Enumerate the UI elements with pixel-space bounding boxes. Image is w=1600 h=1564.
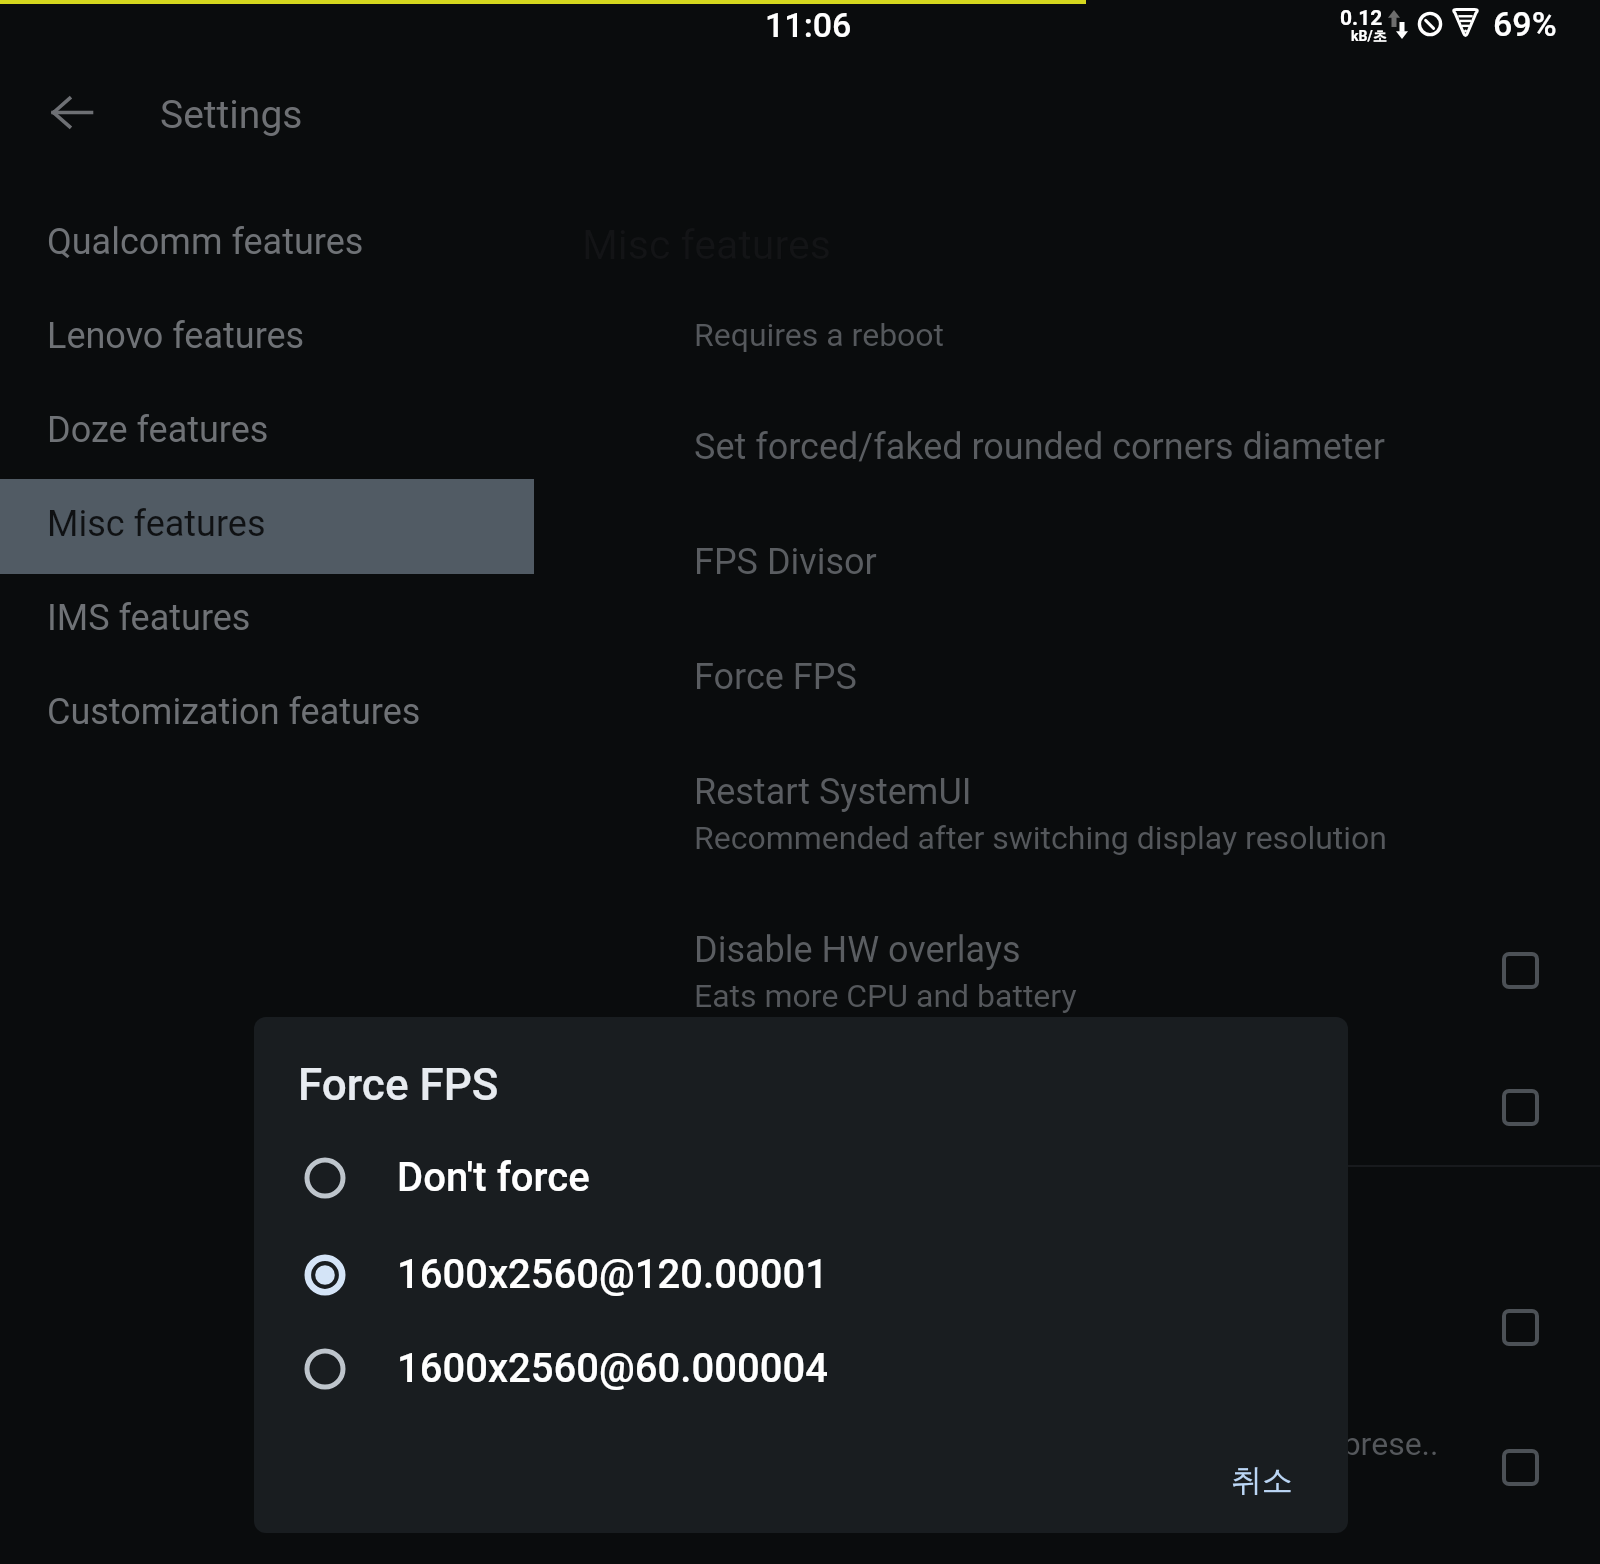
staticText: Force FPS bbox=[694, 656, 857, 698]
staticText: Doze features bbox=[47, 409, 269, 451]
staticText: Settings bbox=[160, 92, 303, 138]
button[interactable]: 취소 bbox=[1211, 1447, 1313, 1514]
button[interactable]: Toggle option bbox=[1484, 1071, 1556, 1143]
button[interactable] bbox=[660, 375, 1450, 485]
staticText: 69% bbox=[1493, 4, 1557, 44]
staticText: Customization features bbox=[47, 691, 421, 733]
button[interactable]: IMS features bbox=[0, 573, 534, 668]
staticText: IMS features bbox=[47, 597, 251, 639]
staticText: FPS Divisor bbox=[694, 541, 877, 583]
button[interactable] bbox=[660, 490, 1450, 600]
staticText: 취소 bbox=[1231, 1461, 1293, 1500]
staticText: 0.12 bbox=[1340, 6, 1383, 31]
staticText: kB/초 bbox=[1351, 28, 1387, 46]
button[interactable]: Toggle option bbox=[1484, 1431, 1556, 1503]
button[interactable] bbox=[660, 605, 1450, 715]
staticText: Requires a reboot bbox=[694, 316, 945, 354]
staticText: 11:06 bbox=[765, 5, 852, 45]
staticText: 1600x2560@60.000004 bbox=[397, 1345, 828, 1392]
button[interactable]: Customization features bbox=[0, 667, 534, 762]
button[interactable]: 1600x2560@120.00001 bbox=[274, 1228, 1328, 1322]
staticText: Lenovo features bbox=[47, 315, 305, 357]
staticText: Misc features bbox=[47, 503, 266, 545]
button[interactable]: Don't force bbox=[274, 1131, 1328, 1225]
button[interactable] bbox=[660, 878, 1450, 1028]
staticText: Qualcomm features bbox=[47, 221, 364, 263]
button[interactable]: Qualcomm features bbox=[0, 197, 534, 292]
button[interactable]: Misc features bbox=[0, 479, 534, 574]
button[interactable]: 1600x2560@60.000004 bbox=[274, 1322, 1328, 1416]
button[interactable] bbox=[660, 258, 1450, 368]
button[interactable] bbox=[660, 1378, 1450, 1528]
staticText: 1600x2560@120.00001 bbox=[397, 1251, 828, 1298]
staticText: Disable HW overlays bbox=[694, 929, 1021, 971]
staticText: Restart SystemUI bbox=[694, 771, 972, 813]
staticText: Misc features bbox=[582, 221, 831, 269]
staticText: Recommended after switching display reso… bbox=[694, 819, 1387, 857]
button[interactable]: Lenovo features bbox=[0, 291, 534, 386]
staticText: Don't force bbox=[397, 1154, 590, 1201]
button[interactable]: Toggle option bbox=[1484, 934, 1556, 1006]
button[interactable]: Doze features bbox=[0, 385, 534, 480]
staticText: Eats more CPU and battery bbox=[694, 977, 1077, 1015]
button[interactable]: Back bbox=[36, 76, 108, 148]
staticText: Force FPS bbox=[298, 1059, 499, 1111]
button[interactable]: Toggle option bbox=[1484, 1291, 1556, 1363]
staticText: Set forced/faked rounded corners diamete… bbox=[694, 426, 1385, 468]
button[interactable] bbox=[660, 720, 1450, 870]
staticText: Forcibly enables/disables all RRO overla… bbox=[694, 1425, 1439, 1463]
